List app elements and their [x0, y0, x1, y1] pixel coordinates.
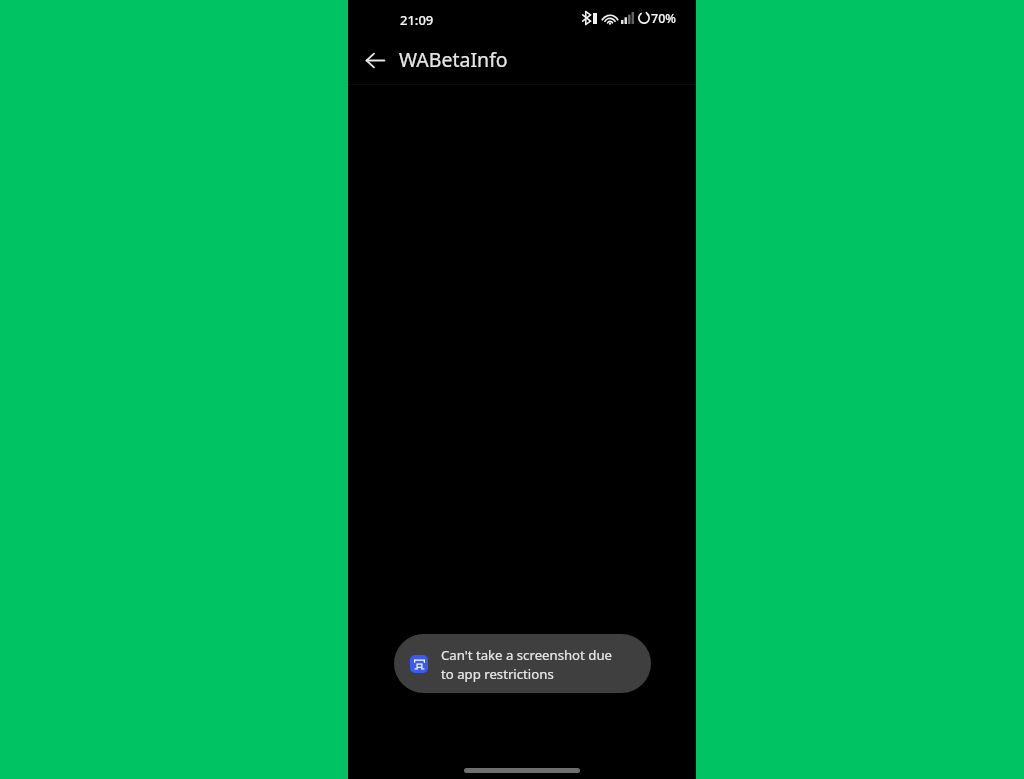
staticText: WABetaInfo	[399, 46, 508, 73]
staticText: Can't take a screenshot due to app restr…	[441, 646, 612, 682]
button[interactable]: Can't take a screenshot due to app restr…	[394, 634, 651, 693]
staticText: 21:09	[400, 11, 434, 29]
staticText: 70%	[651, 10, 676, 26]
button[interactable]: Back	[356, 41, 394, 79]
